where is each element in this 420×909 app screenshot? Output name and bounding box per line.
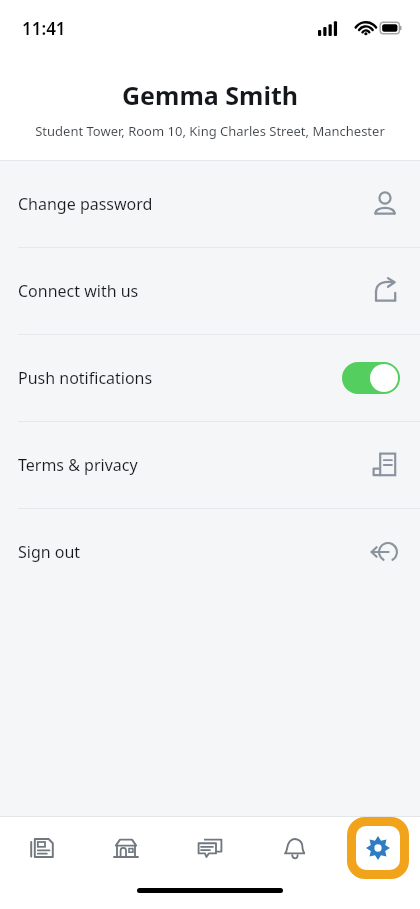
other: Terms and privacy [370, 450, 400, 480]
staticText: Connect with us [18, 280, 370, 302]
staticText: Gemma Smith [122, 78, 298, 112]
other: Sign out [370, 537, 400, 567]
staticText: Student Tower, Room 10, King Charles Str… [12, 122, 408, 140]
button[interactable]: News [0, 817, 84, 879]
other: Push notifications [342, 362, 400, 394]
staticText: Push notifications [18, 367, 342, 389]
button[interactable] [342, 362, 400, 394]
button[interactable]: Messages [168, 817, 252, 879]
button[interactable]: Home [84, 817, 168, 879]
button[interactable]: Terms & privacy [0, 422, 420, 508]
staticText: Change password [18, 193, 370, 215]
other: Connect with us [370, 276, 400, 306]
button[interactable]: Sign out [0, 509, 420, 595]
button[interactable]: Change password [0, 161, 420, 247]
staticText: Sign out [18, 541, 370, 563]
button[interactable]: Notifications [252, 817, 336, 879]
button[interactable]: Connect with us [0, 248, 420, 334]
staticText: Terms & privacy [18, 454, 370, 476]
staticText: 11:41 [22, 17, 66, 40]
button[interactable]: Push notifications [0, 335, 420, 421]
button[interactable]: Settings [336, 817, 420, 879]
other: Change password [370, 189, 400, 219]
